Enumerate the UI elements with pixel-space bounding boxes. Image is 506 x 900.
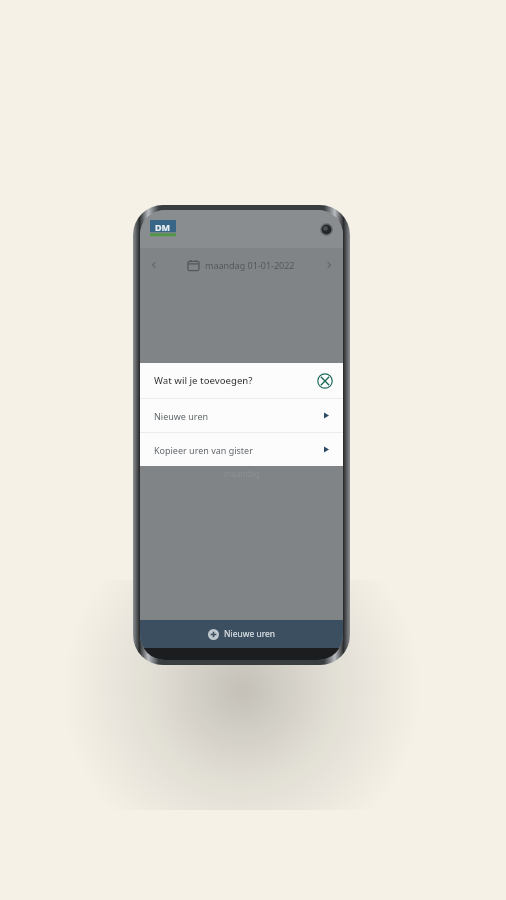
button[interactable]: Logo bbox=[150, 220, 176, 238]
staticText: Wat wil je toevoegen? bbox=[154, 374, 253, 387]
staticText: maandag 01-01-2022 bbox=[205, 259, 295, 271]
button[interactable]: Nieuwe uren bbox=[140, 399, 343, 432]
button[interactable]: Kopieer uren van gister bbox=[140, 433, 343, 466]
staticText: Nieuwe uren bbox=[224, 628, 276, 640]
staticText: maandag bbox=[224, 468, 260, 479]
button[interactable]: Vorige dag bbox=[140, 248, 343, 282]
button[interactable]: Vorige dag bbox=[148, 259, 160, 271]
staticText: DM bbox=[155, 221, 171, 233]
button[interactable]: Sluiten bbox=[317, 373, 333, 389]
button[interactable]: Nieuwe uren bbox=[140, 620, 343, 648]
staticText: Nieuwe uren bbox=[154, 410, 209, 422]
button[interactable]: Volgende dag bbox=[323, 259, 335, 271]
staticText: Kopieer uren van gister bbox=[154, 444, 253, 456]
